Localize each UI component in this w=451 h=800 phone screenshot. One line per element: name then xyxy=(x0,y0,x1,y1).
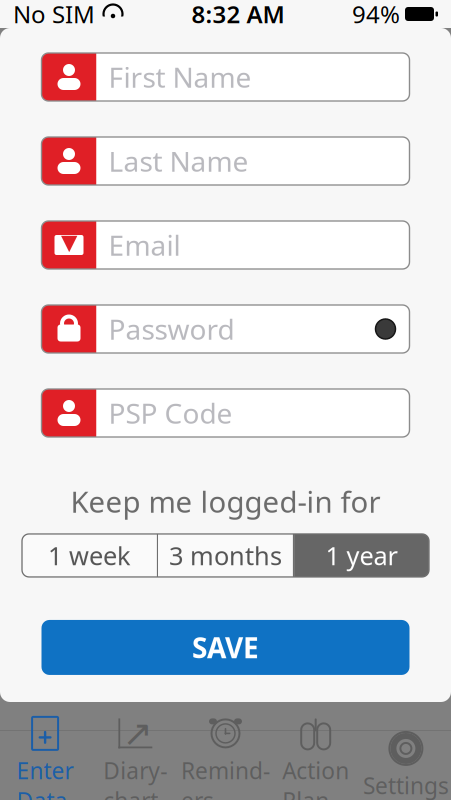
staticText: No SIM xyxy=(13,0,95,30)
staticText: 3 months xyxy=(169,539,282,572)
button[interactable]: 1 year xyxy=(294,534,429,577)
button[interactable]: Action Plan xyxy=(271,731,361,800)
button[interactable]: SAVE xyxy=(41,620,409,675)
button[interactable]: First Name xyxy=(41,53,409,101)
button[interactable]: Password xyxy=(41,305,409,353)
staticText: PSP Code xyxy=(108,394,232,432)
staticText: Enter Data xyxy=(17,755,74,800)
button[interactable]: PSP Code xyxy=(41,389,409,437)
button[interactable]: Last Name xyxy=(41,137,409,185)
staticText: Action Plan xyxy=(282,755,349,800)
button[interactable]: Enter Data xyxy=(0,731,90,800)
staticText: Keep me logged-in for xyxy=(70,482,380,521)
staticText: Last Name xyxy=(108,142,248,180)
staticText: SAVE xyxy=(192,629,259,666)
staticText: 1 week xyxy=(48,539,131,572)
button[interactable]: Reminders xyxy=(180,731,271,800)
staticText: ▼ xyxy=(61,230,77,254)
button[interactable]: ↗ xyxy=(90,731,180,800)
staticText: 8:32 AM xyxy=(191,0,284,30)
staticText: First Name xyxy=(108,58,251,96)
staticText: Password xyxy=(108,310,234,348)
button[interactable]: Settings xyxy=(361,731,451,800)
staticText: ↗ xyxy=(123,713,153,754)
staticText: Email xyxy=(108,226,180,264)
button[interactable]: 3 months xyxy=(158,534,293,577)
button[interactable]: 1 week xyxy=(22,534,157,577)
button[interactable]: Email xyxy=(41,221,409,269)
staticText: Settings xyxy=(363,770,449,800)
staticText: Diary-chart xyxy=(103,755,167,800)
staticText: Reminders xyxy=(181,755,270,800)
staticText: 94% xyxy=(352,0,400,30)
staticText: 1 year xyxy=(325,539,397,572)
